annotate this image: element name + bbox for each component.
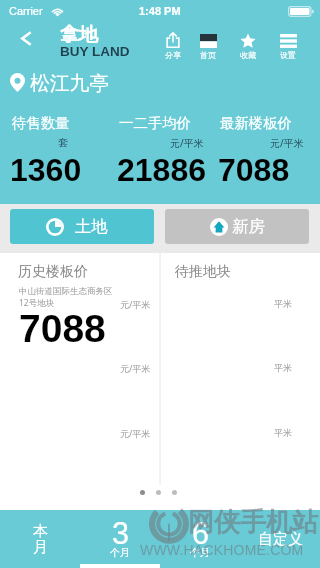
staticText: 个月 (110, 546, 130, 559)
staticText: 新房 (232, 216, 265, 237)
staticText: 网侠手机站 (188, 506, 318, 539)
staticText: 一二手均价 (119, 114, 191, 132)
staticText: 7088 (218, 152, 290, 188)
staticText: 收藏 (240, 50, 256, 60)
staticText: 待推地块 (175, 263, 231, 281)
staticText: 元/平米 (120, 298, 151, 310)
staticText: 3 (112, 516, 129, 550)
staticText: 松江九亭 (30, 71, 110, 96)
staticText: 历史楼板价 (18, 263, 88, 281)
button[interactable]: Settings (270, 27, 306, 60)
button[interactable]: 新房 (165, 209, 309, 244)
staticText: 个月 (190, 546, 210, 559)
button[interactable]: Back (4, 16, 48, 60)
staticText: 平米 (274, 427, 292, 438)
staticText: Carrier (9, 5, 43, 17)
staticText: 首页 (200, 50, 216, 60)
button[interactable]: Share (155, 27, 191, 60)
staticText: 最新楼板价 (220, 114, 292, 132)
staticText: 套 (58, 136, 68, 149)
staticText: 元/平米 (120, 427, 151, 439)
staticText: 元/平米 (120, 362, 151, 374)
button[interactable]: 6 (160, 510, 240, 568)
staticText: 元/平米 (170, 136, 204, 150)
staticText: 平米 (274, 298, 292, 309)
staticText: 自定义 (258, 530, 303, 549)
button[interactable]: 自定义 (240, 510, 320, 568)
staticText: 元/平米 (270, 136, 304, 150)
staticText: 1360 (10, 152, 82, 188)
staticText: 本月 (32, 522, 49, 556)
staticText: 分享 (165, 50, 181, 60)
button[interactable]: Favorites (230, 27, 266, 60)
staticText: 平米 (274, 362, 292, 373)
staticText: WWW.HACKHOME.COM (140, 542, 304, 558)
staticText: 7088 (19, 307, 106, 351)
staticText: BUY LAND (60, 44, 130, 59)
button[interactable]: 本月 (0, 510, 80, 568)
staticText: 中山街道国际生态商务区12号地块 (19, 286, 117, 308)
staticText: 1:48 PM (139, 5, 181, 17)
staticText: 拿地 (60, 23, 98, 47)
staticText: 6 (192, 516, 209, 550)
staticText: 设置 (280, 50, 296, 60)
button[interactable]: 3 (80, 510, 160, 568)
staticText: 21886 (117, 152, 206, 188)
button[interactable]: 土地 (10, 209, 154, 244)
button[interactable]: Home (190, 27, 226, 60)
staticText: 待售数量 (12, 114, 70, 132)
staticText: 土地 (75, 216, 108, 237)
